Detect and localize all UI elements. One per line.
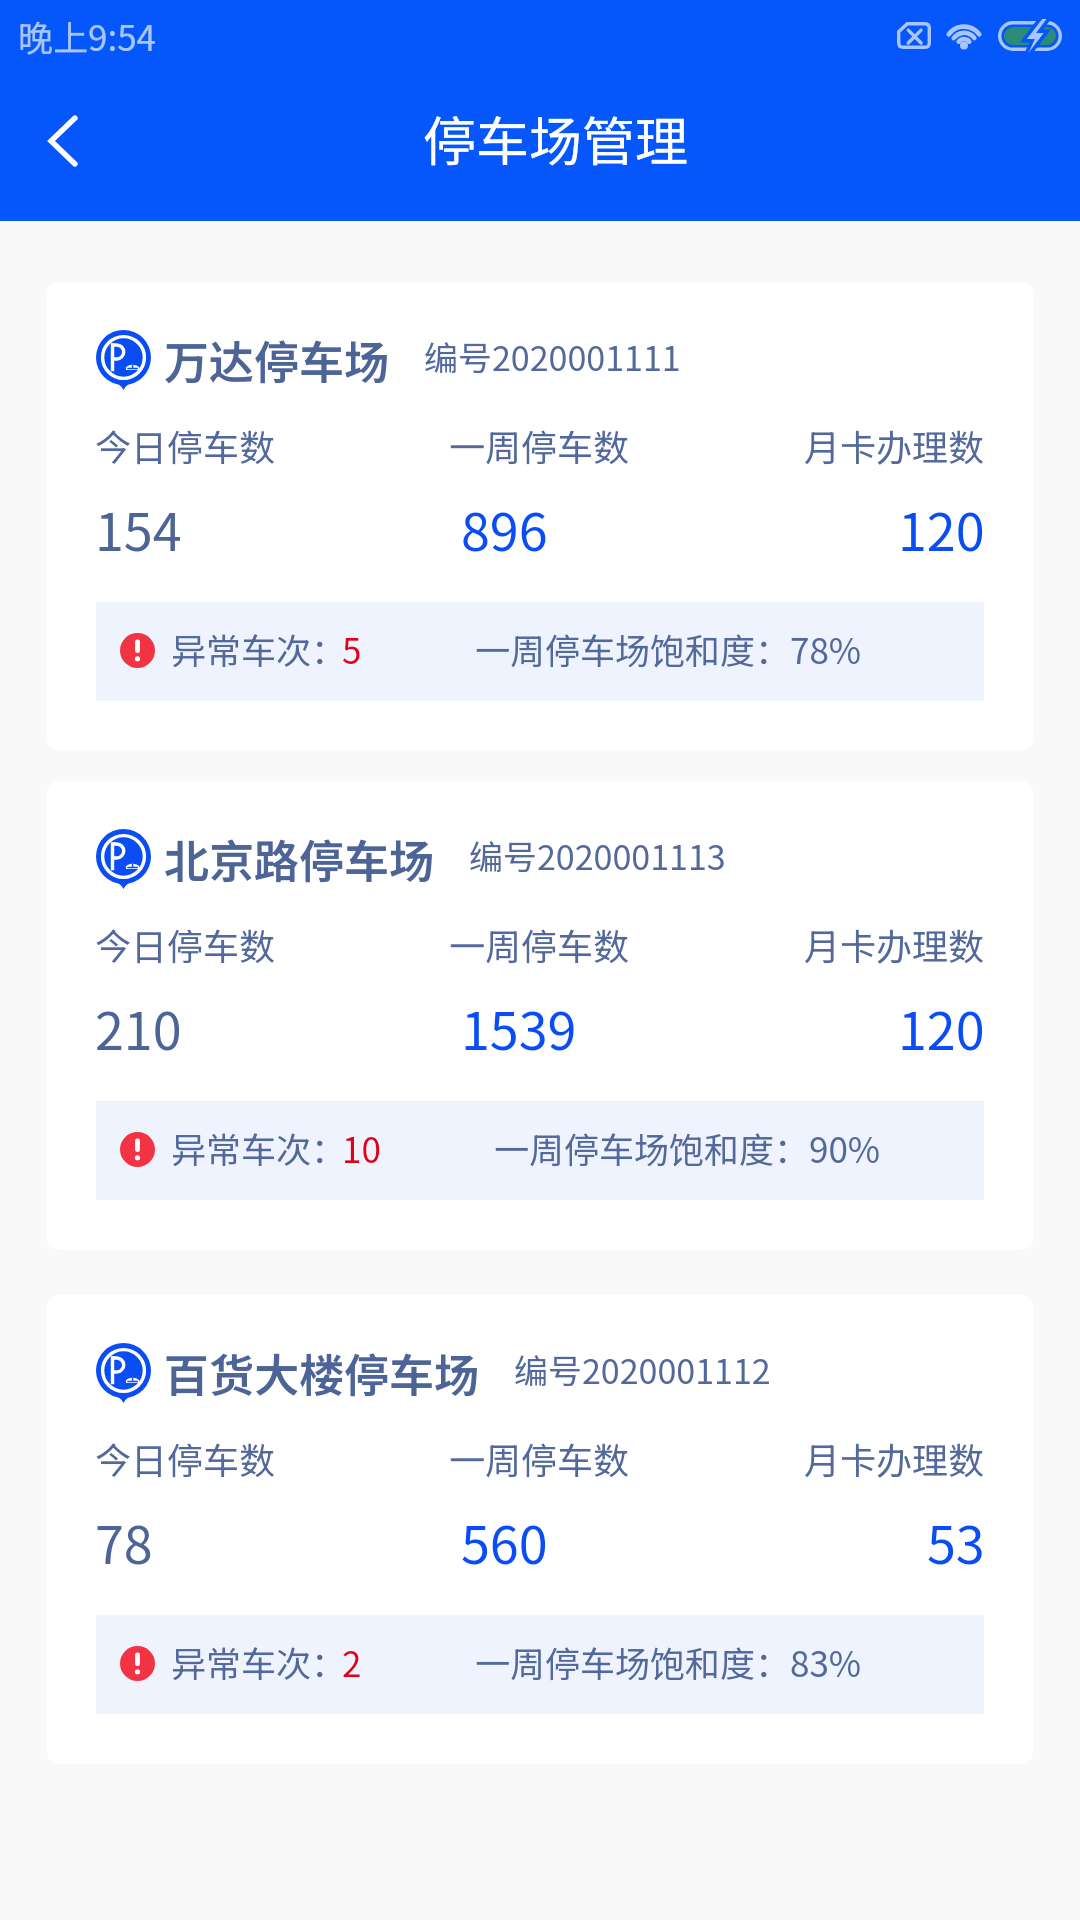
staticText: 154: [95, 491, 182, 566]
staticText: 月卡办理数: [804, 918, 985, 970]
staticText: 北京路停车场: [164, 826, 435, 891]
staticText: 晚上9:54: [18, 10, 157, 61]
button[interactable]: 万达停车场: [47, 282, 1033, 751]
button[interactable]: Back: [21, 101, 101, 181]
staticText: 今日停车数: [95, 1432, 276, 1484]
staticText: 异常车次：: [171, 623, 347, 674]
staticText: 2: [342, 1636, 362, 1687]
staticText: 编号2020001113: [469, 831, 726, 880]
staticText: 210: [95, 990, 182, 1065]
staticText: 编号2020001112: [514, 1345, 771, 1394]
staticText: 120: [898, 491, 985, 566]
staticText: 一周停车数: [449, 1432, 630, 1484]
button[interactable]: 百货大楼停车场: [47, 1295, 1033, 1764]
staticText: 今日停车数: [95, 419, 276, 471]
staticText: 120: [898, 990, 985, 1065]
staticText: 1539: [461, 990, 577, 1065]
staticText: 53: [927, 1504, 985, 1579]
staticText: 896: [461, 491, 548, 566]
staticText: 78: [95, 1504, 153, 1579]
staticText: 一周停车场饱和度：90%: [494, 1122, 881, 1173]
staticText: 月卡办理数: [804, 419, 985, 471]
staticText: 一周停车场饱和度：78%: [475, 623, 862, 674]
staticText: 停车场管理: [423, 100, 688, 177]
staticText: 异常车次：: [171, 1636, 347, 1687]
button[interactable]: 北京路停车场: [47, 781, 1033, 1250]
staticText: 百货大楼停车场: [164, 1340, 480, 1405]
staticText: 今日停车数: [95, 918, 276, 970]
staticText: 异常车次：: [171, 1122, 347, 1173]
staticText: 编号2020001111: [424, 332, 681, 381]
staticText: 一周停车场饱和度：83%: [475, 1636, 862, 1687]
staticText: 一周停车数: [449, 419, 630, 471]
staticText: 5: [342, 623, 362, 674]
staticText: 万达停车场: [164, 327, 390, 392]
staticText: 一周停车数: [449, 918, 630, 970]
staticText: 10: [342, 1122, 381, 1173]
staticText: 月卡办理数: [804, 1432, 985, 1484]
staticText: 560: [461, 1504, 548, 1579]
